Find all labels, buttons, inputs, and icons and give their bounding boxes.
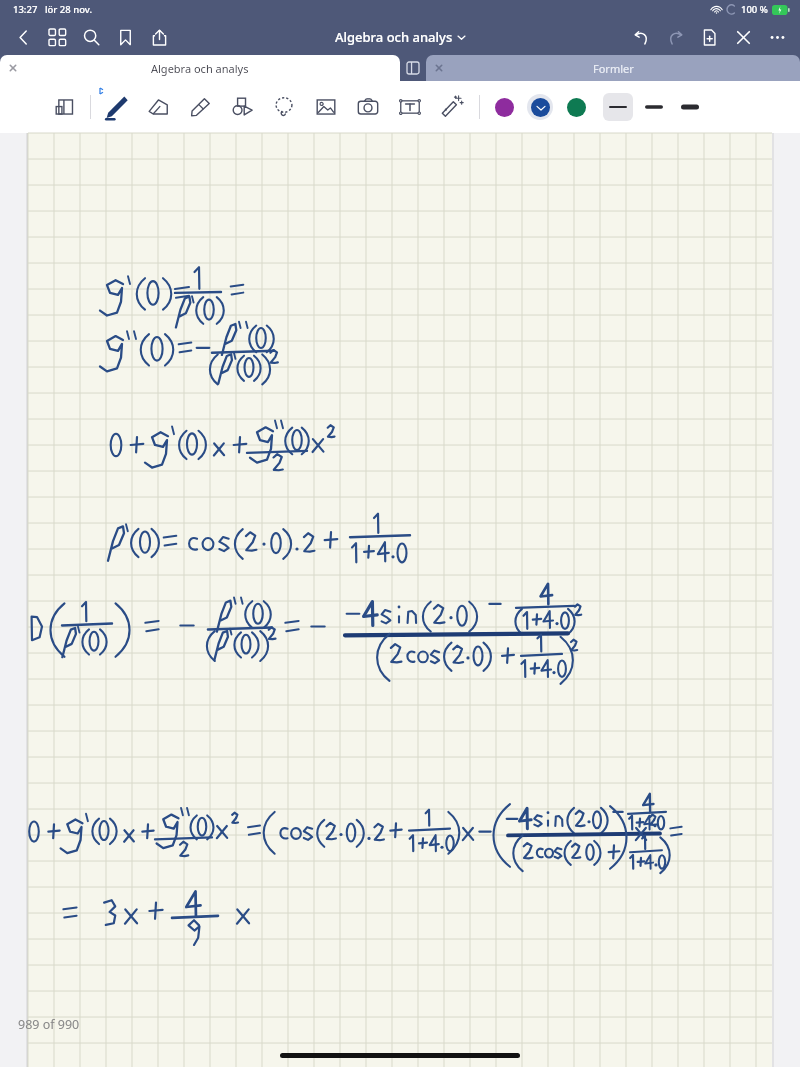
button[interactable]: More options — [760, 20, 794, 54]
button[interactable]: Share — [142, 20, 176, 54]
staticText: Algebra och analys — [151, 61, 249, 76]
staticText: 100 % — [741, 3, 768, 16]
staticText: Formler — [593, 61, 634, 76]
button[interactable]: Camera — [347, 86, 389, 128]
button[interactable]: Close tab — [0, 55, 400, 81]
button[interactable]: Close tab — [426, 55, 800, 81]
button[interactable]: Import page — [44, 86, 86, 128]
button[interactable]: Pen — [95, 86, 137, 128]
button[interactable]: Magic tool — [431, 86, 473, 128]
button[interactable]: Stroke width — [636, 91, 672, 123]
button[interactable]: Redo — [658, 20, 692, 54]
button[interactable]: Close tab — [430, 59, 448, 77]
button[interactable]: Image — [305, 86, 347, 128]
staticText: lör 28 nov. — [45, 3, 92, 16]
staticText: 989 of 990 — [18, 1016, 80, 1033]
button[interactable]: Stroke width — [672, 91, 708, 123]
button[interactable]: Lasso — [263, 86, 305, 128]
staticText: 13:27 — [13, 3, 38, 16]
button[interactable]: Search — [74, 20, 108, 54]
button[interactable]: Colour — [558, 89, 594, 125]
button[interactable]: Algebra och analys — [329, 24, 471, 50]
button[interactable]: Shapes — [221, 86, 263, 128]
button[interactable]: Stroke width — [600, 91, 636, 123]
button[interactable]: Add page — [692, 20, 726, 54]
button[interactable]: Text box — [389, 86, 431, 128]
button[interactable]: Colour — [522, 89, 558, 125]
button[interactable]: Undo — [624, 20, 658, 54]
button[interactable]: Close tab — [4, 59, 22, 77]
button[interactable]: Highlighter — [179, 86, 221, 128]
button[interactable]: Close — [726, 20, 760, 54]
button[interactable]: Eraser — [137, 86, 179, 128]
staticText: Algebra och analys — [335, 28, 453, 46]
button[interactable]: Back — [6, 20, 40, 54]
button[interactable]: Pages — [40, 20, 74, 54]
button[interactable]: Split view — [400, 55, 426, 81]
button[interactable]: Bookmark — [108, 20, 142, 54]
button[interactable]: Colour — [486, 89, 522, 125]
